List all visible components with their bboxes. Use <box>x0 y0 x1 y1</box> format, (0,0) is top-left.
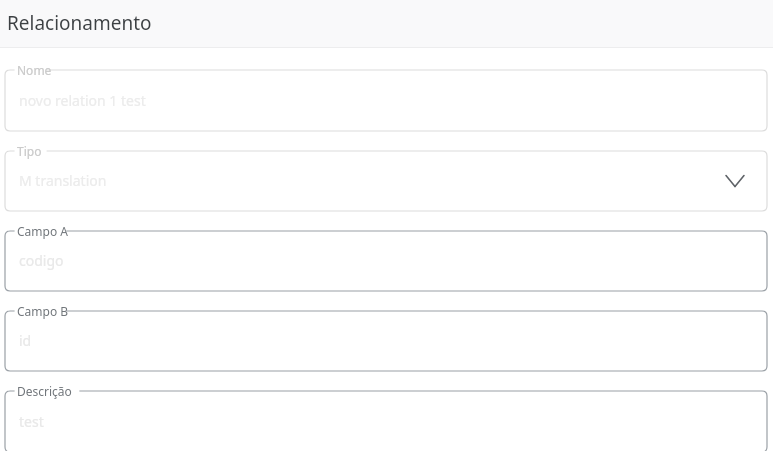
staticText: Nome <box>17 62 52 78</box>
button[interactable]: Campo B <box>5 311 767 371</box>
button[interactable]: Nome <box>5 70 767 131</box>
staticText: id <box>19 331 32 350</box>
staticText: test <box>19 412 44 431</box>
staticText: Tipo <box>17 143 42 159</box>
button[interactable]: Campo A <box>5 231 767 291</box>
staticText: codigo <box>19 251 64 270</box>
staticText: M translation <box>19 171 107 190</box>
button[interactable]: Descrição <box>5 391 767 451</box>
staticText: Campo B <box>17 303 69 319</box>
staticText: novo relation 1 test <box>19 91 146 110</box>
staticText: Descrição <box>17 383 72 399</box>
staticText: Relacionamento <box>7 10 152 36</box>
staticText: Campo A <box>17 223 68 239</box>
button[interactable]: Tipo <box>5 151 767 211</box>
